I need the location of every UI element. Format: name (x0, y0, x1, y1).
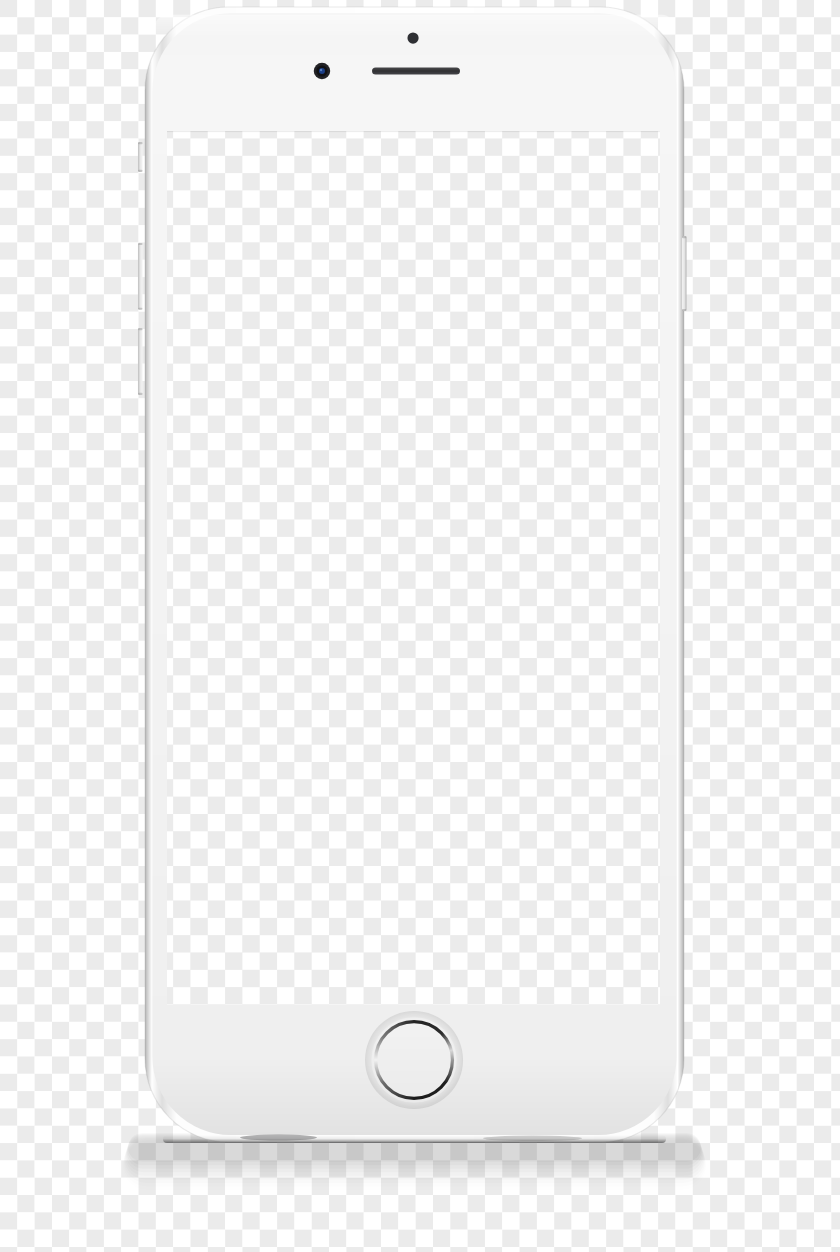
button[interactable]: White iPhone device mockup with transpar… (0, 0, 840, 1252)
